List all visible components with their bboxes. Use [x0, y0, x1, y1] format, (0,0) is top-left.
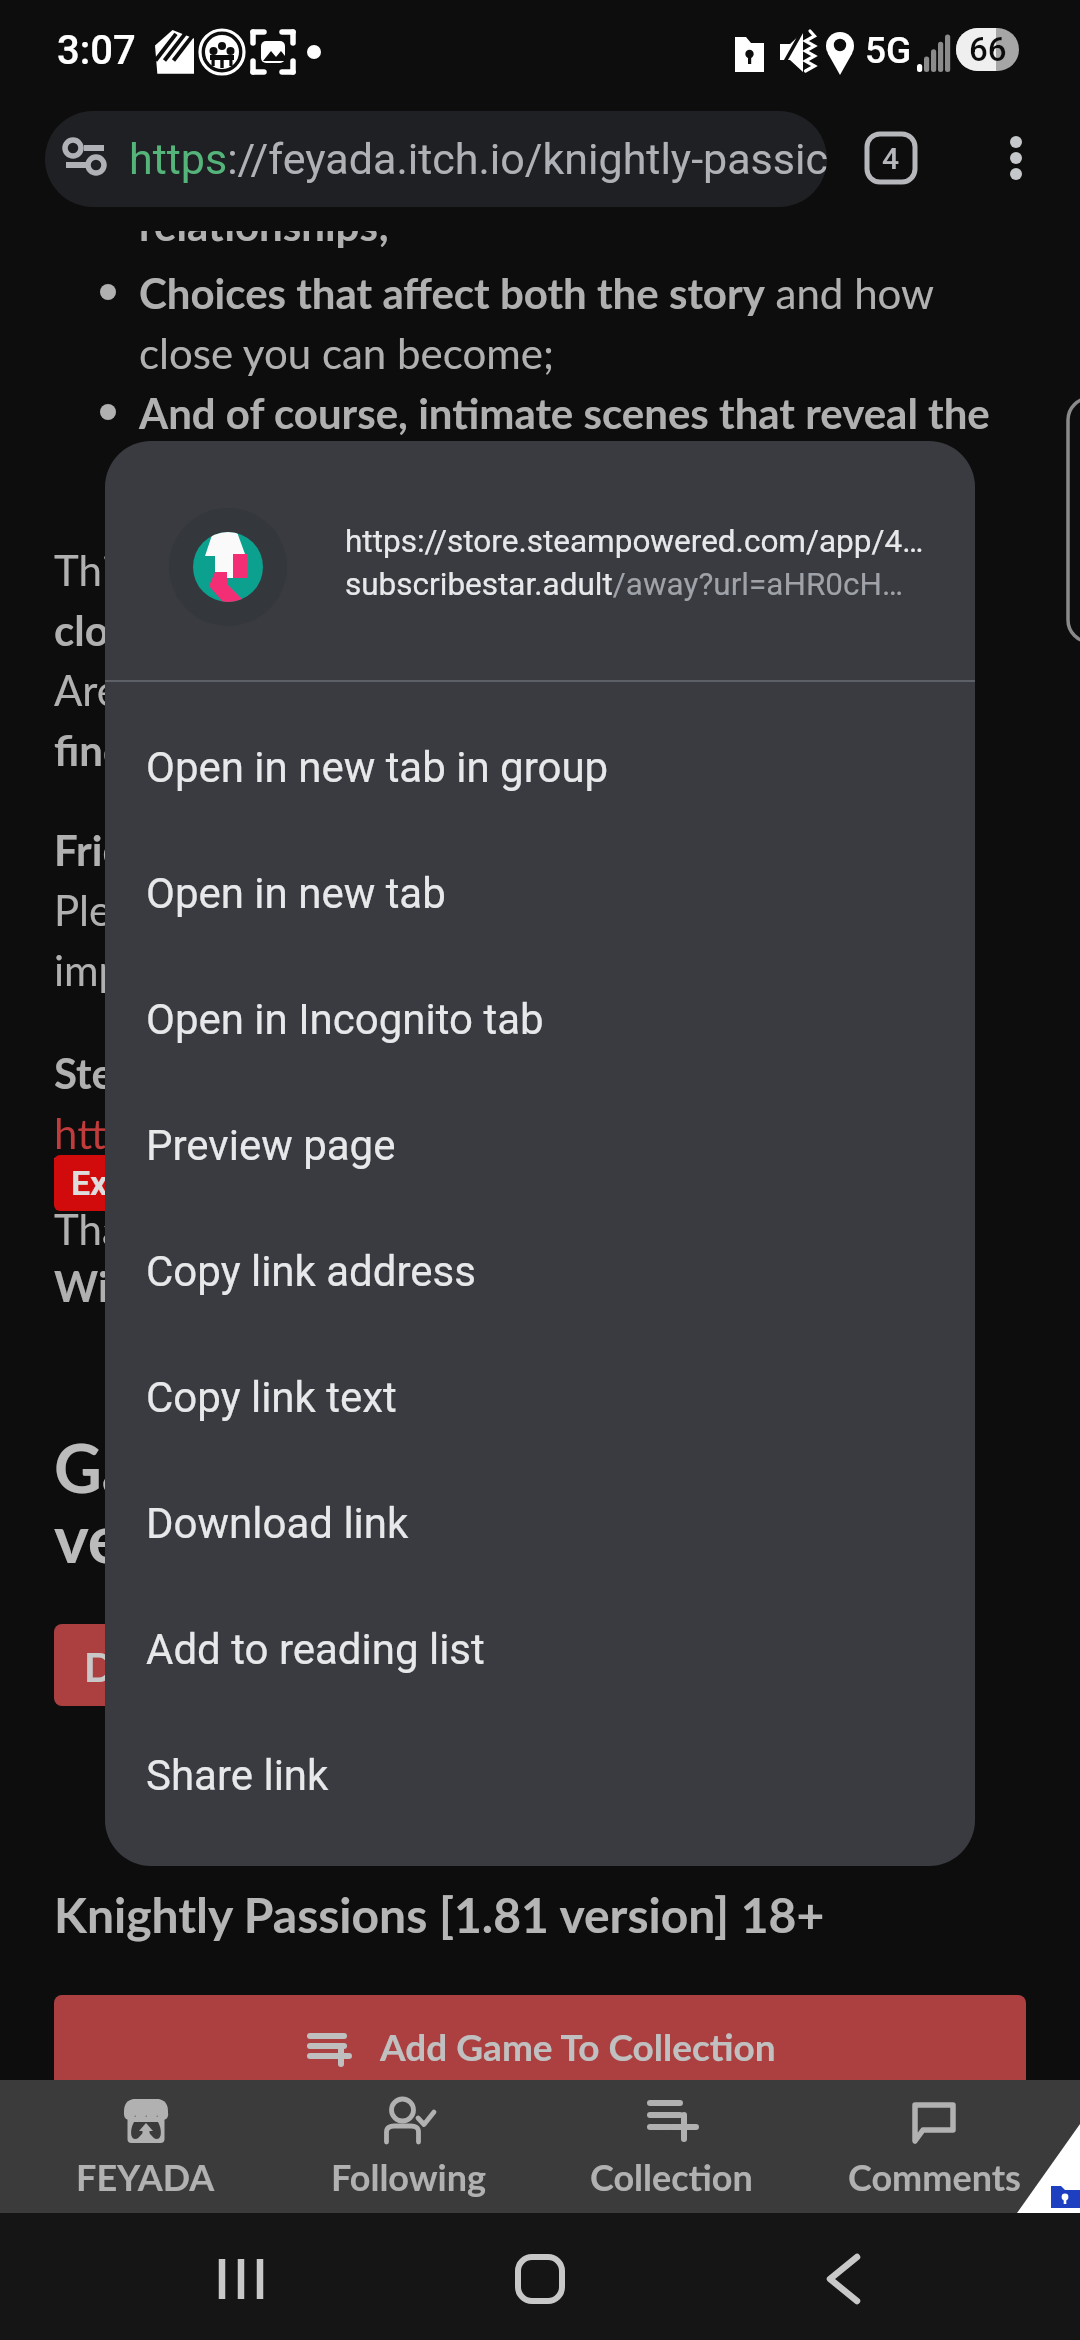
staticText: Please support the project, this is real… — [54, 885, 774, 935]
button[interactable]: Preview page — [105, 1082, 975, 1208]
button[interactable]: Collection — [540, 2080, 803, 2213]
button[interactable]: FEYADA — [14, 2080, 277, 2213]
staticText: https://feyada.itch.io/knightly-passic — [129, 134, 827, 184]
staticText: subscribestar.adult/away?url=aHR0cH… — [345, 566, 904, 603]
staticText: This is a story about how a chance meeti… — [54, 545, 920, 595]
staticText: Download — [84, 1643, 268, 1691]
button[interactable]: Add Game To Collection — [54, 1995, 1026, 2096]
staticText: 4 — [882, 141, 900, 176]
staticText: Preview page — [146, 1121, 396, 1170]
button[interactable]: Share link — [105, 1712, 975, 1838]
staticText: 3:07 — [57, 27, 136, 74]
button[interactable]: Customize and control Chrome — [988, 130, 1044, 186]
staticText: Game — [54, 1428, 226, 1507]
staticText: External link — [54, 1163, 277, 1203]
staticText: https://store.steampowered.com/app/4 — [54, 1108, 778, 1158]
staticText: Are you ready to plunge into this world … — [54, 665, 930, 715]
staticText: relationships; — [139, 231, 390, 250]
staticText: Share link — [146, 1751, 329, 1800]
staticText: https://store.steampowered.com/app/4… — [345, 523, 924, 560]
staticText: 5G — [865, 29, 912, 72]
button[interactable]: Open in new tab — [105, 830, 975, 956]
staticText: Friends! — [54, 825, 203, 875]
staticText: Wishlist it! — [54, 1261, 255, 1311]
button[interactable]: Recent apps — [185, 2213, 295, 2340]
staticText: Open in Incognito tab — [146, 995, 544, 1044]
staticText: important for us! — [54, 945, 363, 995]
staticText: Add Game To Collection — [380, 2024, 776, 2068]
button[interactable]: Back — [788, 2213, 898, 2340]
staticText: Thanks to everyone who supports us! — [54, 1204, 743, 1254]
button[interactable]: Open in new tab in group — [105, 704, 975, 830]
staticText: And of course, intimate scenes that reve… — [139, 388, 990, 438]
staticText: Steam page: — [54, 1048, 281, 1098]
button[interactable]: Home — [485, 2213, 595, 2340]
staticText: version — [54, 1498, 269, 1577]
staticText: close you can become; — [139, 328, 554, 378]
staticText: Comments — [848, 2155, 1021, 2198]
button[interactable]: Open in Incognito tab — [105, 956, 975, 1082]
staticText: 66 — [969, 30, 1007, 69]
staticText: Open in new tab — [146, 869, 446, 918]
staticText: Knightly Passions [1.81 version] 18+ — [54, 1886, 825, 1944]
button[interactable]: Copy link text — [105, 1334, 975, 1460]
button[interactable]: Add to reading list — [105, 1586, 975, 1712]
staticText: Download link — [146, 1499, 409, 1548]
button[interactable]: Download link — [105, 1460, 975, 1586]
staticText: Following — [331, 2155, 487, 2198]
staticText: FEYADA — [76, 2155, 215, 2198]
staticText: close you can become; — [54, 605, 474, 655]
staticText: Copy link address — [146, 1247, 476, 1296]
button[interactable]: Switch or close tabs, 4 tabs — [866, 133, 916, 183]
button[interactable]: Following — [277, 2080, 540, 2213]
button[interactable]: Download — [54, 1624, 344, 1706]
button[interactable]: Comments — [803, 2080, 1066, 2213]
staticText: Add to reading list — [146, 1625, 485, 1674]
button[interactable]: https://feyada.itch.io/knightly-passic — [45, 111, 827, 207]
staticText: Collection — [590, 2155, 753, 2198]
staticText: Open in new tab in group — [146, 743, 609, 792]
staticText: Copy link text — [146, 1373, 397, 1422]
button[interactable]: Copy link address — [105, 1208, 975, 1334]
staticText: find out what happens next? — [54, 725, 585, 775]
staticText: Choices that affect both the story and h… — [139, 268, 935, 318]
